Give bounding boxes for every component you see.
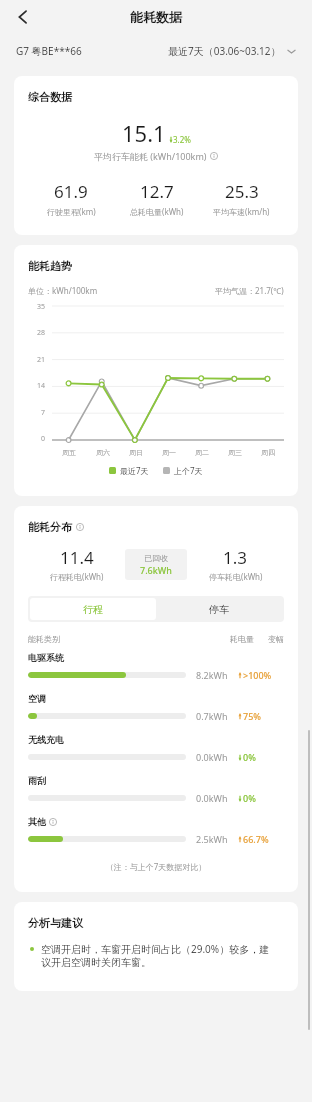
staticText: 停车: [209, 603, 229, 616]
staticText: 0%: [243, 751, 256, 763]
staticText: 空调: [28, 693, 46, 704]
staticText: 周三: [228, 448, 242, 457]
staticText: 平均行车能耗 (kWh/100km): [94, 150, 207, 162]
staticText: （注：与上个7天数据对比）: [28, 861, 284, 872]
staticText: 无线充电: [28, 734, 64, 745]
staticText: 3.2%: [173, 134, 191, 145]
staticText: 周日: [129, 448, 143, 457]
staticText: 周五: [62, 448, 76, 457]
staticText: 空调开启时，车窗开启时间占比（29.0%）较多，建: [41, 942, 270, 956]
staticText: 分析与建议: [28, 916, 83, 930]
button[interactable]: 无线充电: [28, 734, 284, 775]
staticText: 25.3: [225, 180, 259, 203]
button[interactable]: 最近7天（03.06~03.12）: [168, 44, 296, 58]
staticText: 0.0kWh: [196, 792, 236, 804]
staticText: 总耗电量(kWh): [130, 206, 184, 217]
button[interactable]: 雨刮: [28, 775, 284, 816]
staticText: 0%: [243, 792, 256, 804]
staticText: 28: [37, 328, 46, 338]
staticText: 1.3: [223, 546, 248, 569]
staticText: 行驶里程(km): [47, 206, 96, 217]
staticText: 最近7天（03.06~03.12）: [168, 44, 281, 58]
staticText: 上个7天: [174, 465, 203, 476]
staticText: 周六: [96, 448, 110, 457]
staticText: 最近7天: [120, 465, 149, 476]
staticText: 停车耗电(kWh): [209, 571, 263, 582]
staticText: 能耗分布: [28, 520, 72, 534]
staticText: 35: [37, 302, 46, 312]
staticText: 单位：kWh/100km: [28, 285, 98, 296]
staticText: 平均车速(km/h): [213, 206, 270, 217]
staticText: 能耗数据: [130, 9, 182, 25]
staticText: 0.0kWh: [196, 751, 236, 763]
staticText: 行程耗电(kWh): [50, 571, 104, 582]
button[interactable]: Back: [8, 2, 38, 32]
staticText: 已回收: [144, 553, 168, 563]
staticText: 7.6kWh: [140, 564, 172, 576]
staticText: 0.7kWh: [196, 710, 236, 722]
staticText: 15.1: [122, 118, 166, 148]
staticText: 平均气温：21.7(℃): [215, 285, 284, 296]
staticText: 议开启空调时关闭车窗。: [41, 956, 151, 969]
staticText: 耗电量: [230, 634, 254, 644]
staticText: 行程: [83, 603, 103, 616]
button[interactable]: 其他: [28, 816, 284, 857]
staticText: 变幅: [268, 634, 284, 644]
staticText: 电驱系统: [28, 652, 64, 663]
staticText: G7 粤BE***66: [16, 44, 82, 58]
staticText: >100%: [243, 669, 272, 681]
button[interactable]: 电驱系统: [28, 652, 284, 693]
button[interactable]: 行程: [30, 598, 156, 620]
staticText: 21: [37, 355, 46, 365]
button[interactable]: 空调: [28, 693, 284, 734]
staticText: 0: [41, 434, 46, 444]
staticText: 2.5kWh: [196, 833, 236, 845]
staticText: 12.7: [140, 180, 174, 203]
staticText: 能耗类别: [28, 634, 60, 644]
staticText: 周一: [162, 448, 176, 457]
staticText: 14: [37, 381, 46, 391]
staticText: 66.7%: [243, 833, 269, 845]
staticText: 周二: [195, 448, 209, 457]
staticText: 雨刮: [28, 775, 46, 786]
staticText: 7: [41, 408, 46, 418]
staticText: 75%: [243, 710, 261, 722]
button[interactable]: 停车: [156, 598, 282, 620]
staticText: 周四: [261, 448, 275, 457]
staticText: 11.4: [60, 546, 94, 569]
staticText: 能耗趋势: [28, 259, 72, 273]
staticText: 8.2kWh: [196, 669, 236, 681]
staticText: 其他: [28, 816, 46, 827]
staticText: 61.9: [54, 180, 88, 203]
staticText: 综合数据: [28, 90, 72, 104]
